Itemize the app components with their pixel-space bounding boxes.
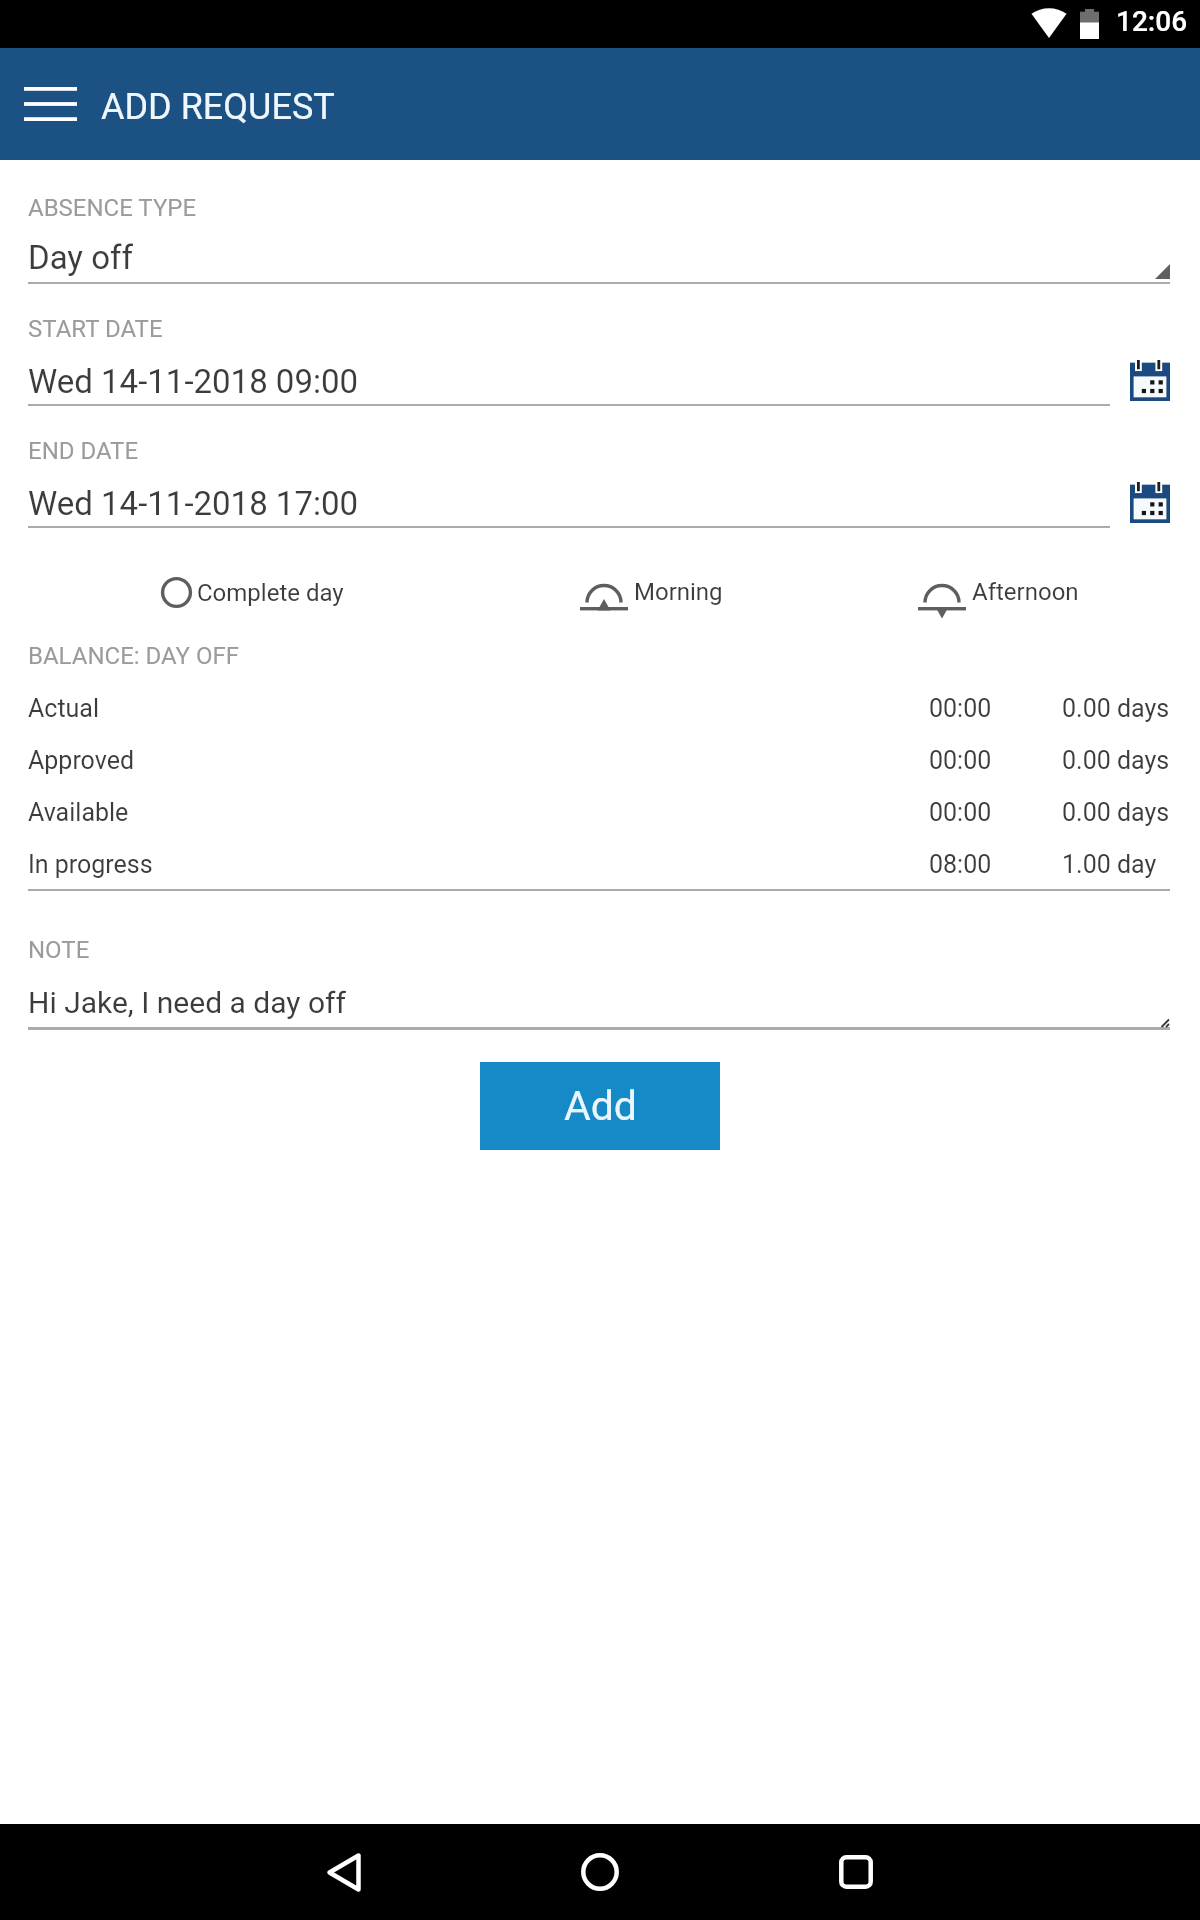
staticText: 0.00 days xyxy=(1062,798,1170,827)
button[interactable]: Wed 14-11-2018 09:00 xyxy=(28,356,1110,404)
button[interactable]: Day off xyxy=(28,232,1170,280)
staticText: ABSENCE TYPE xyxy=(28,194,197,222)
button[interactable]: Complete day xyxy=(159,566,344,618)
staticText: 00:00 xyxy=(929,746,992,775)
staticText: 00:00 xyxy=(929,694,992,723)
staticText: In progress xyxy=(28,850,153,879)
button[interactable]: Pick date xyxy=(1116,351,1184,409)
button[interactable]: Add xyxy=(480,1062,720,1150)
staticText: Afternoon xyxy=(972,578,1079,606)
staticText: 0.00 days xyxy=(1062,746,1170,775)
staticText: NOTE xyxy=(28,936,90,964)
staticText: 00:00 xyxy=(929,798,992,827)
staticText: Add xyxy=(564,1082,637,1130)
staticText: 08:00 xyxy=(929,850,992,879)
staticText: Morning xyxy=(634,578,723,606)
button[interactable]: Home xyxy=(552,1824,648,1920)
button[interactable]: Wed 14-11-2018 17:00 xyxy=(28,478,1110,526)
button[interactable]: Recent apps xyxy=(808,1824,904,1920)
staticText: Wed 14-11-2018 17:00 xyxy=(28,484,359,523)
staticText: Actual xyxy=(28,694,100,723)
staticText: 12:06 xyxy=(1116,5,1188,38)
button[interactable]: Back xyxy=(296,1824,392,1920)
button[interactable]: Morning xyxy=(580,566,723,618)
button[interactable]: Open navigation menu xyxy=(12,75,88,133)
staticText: ADD REQUEST xyxy=(101,86,335,128)
staticText: END DATE xyxy=(28,437,139,465)
button[interactable]: Pick date xyxy=(1116,473,1184,531)
staticText: Hi Jake, I need a day off xyxy=(28,985,346,1020)
staticText: START DATE xyxy=(28,315,163,343)
staticText: 1.00 day xyxy=(1062,850,1157,879)
staticText: Complete day xyxy=(197,579,344,607)
staticText: Available xyxy=(28,798,129,827)
staticText: 0.00 days xyxy=(1062,694,1170,723)
staticText: BALANCE: DAY OFF xyxy=(28,642,240,670)
staticText: Approved xyxy=(28,746,134,775)
button[interactable]: Hi Jake, I need a day off xyxy=(28,979,1170,1023)
staticText: Wed 14-11-2018 09:00 xyxy=(28,362,359,401)
staticText: Day off xyxy=(28,238,133,277)
button[interactable]: Afternoon xyxy=(918,566,1079,618)
